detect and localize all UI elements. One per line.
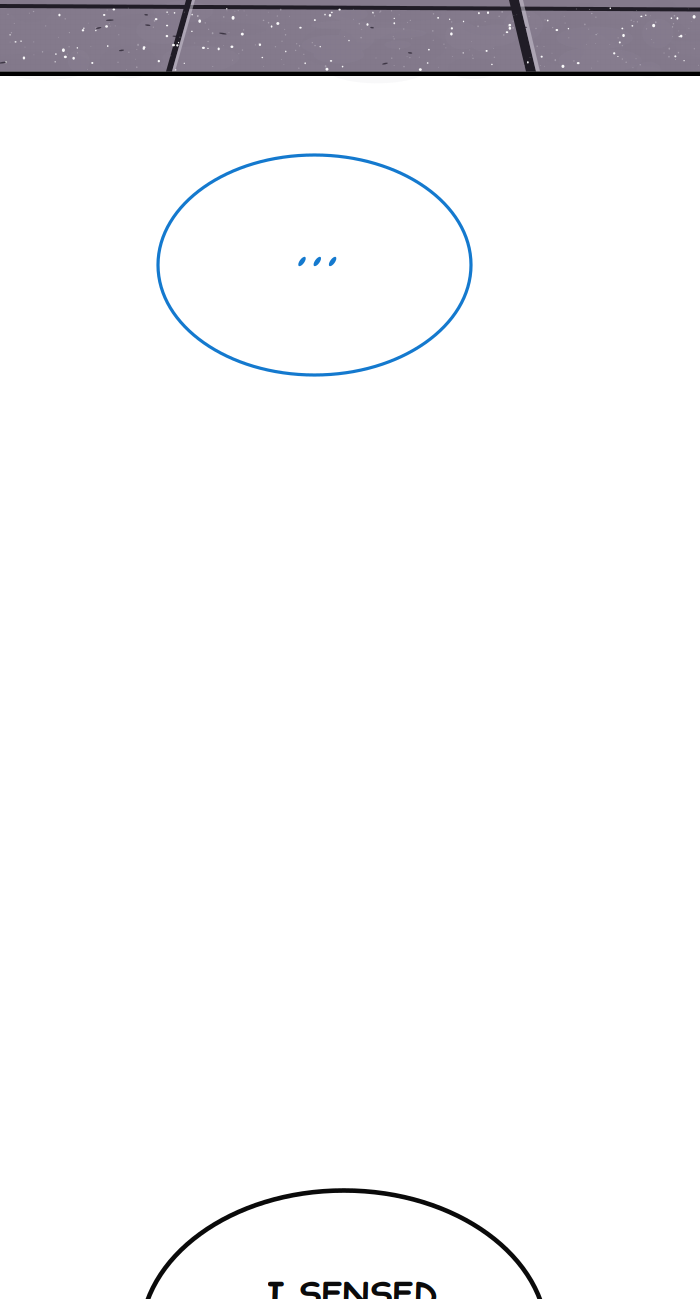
staticText: I SENSED [266,1271,437,1299]
button[interactable]: Comic page. I sensed… [0,0,700,1299]
